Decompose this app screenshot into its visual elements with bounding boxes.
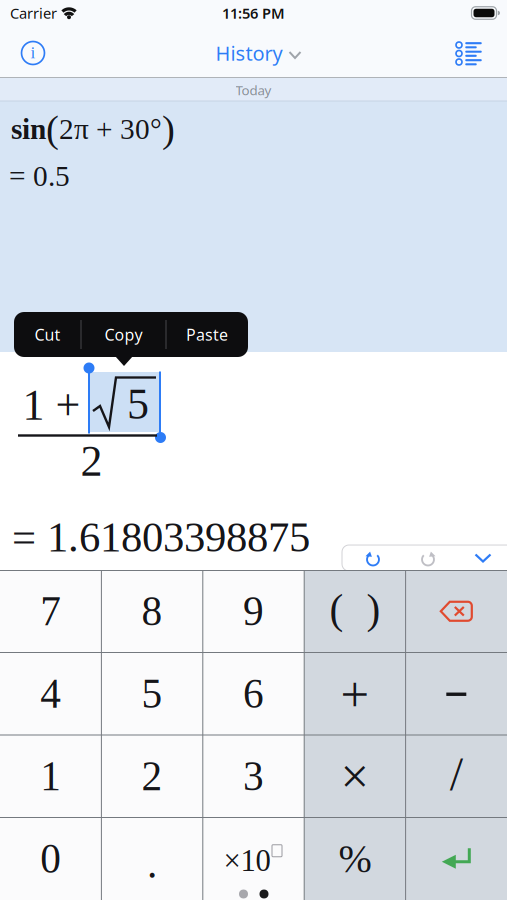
button[interactable]: ×10	[203, 817, 304, 900]
button[interactable]	[406, 570, 507, 652]
button[interactable]: ×	[304, 735, 406, 817]
staticText: = 0.5	[9, 160, 70, 192]
button[interactable]: 4	[0, 652, 101, 735]
staticText: 0	[40, 836, 61, 882]
staticText: (	[46, 108, 59, 150]
button[interactable]: History	[215, 32, 300, 74]
staticText: History	[215, 40, 282, 66]
button[interactable]: Copy	[81, 312, 165, 357]
staticText: 11:56 PM	[222, 3, 285, 23]
button[interactable]: .	[101, 817, 203, 900]
button[interactable]	[406, 817, 507, 900]
staticText: Copy	[104, 324, 142, 345]
button[interactable]	[455, 545, 507, 571]
button[interactable]	[406, 652, 507, 735]
staticText: 8	[142, 588, 163, 634]
staticText: 5	[142, 671, 163, 717]
button[interactable]: 3	[203, 735, 304, 817]
staticText: )	[366, 586, 380, 632]
staticText: 3	[243, 753, 264, 799]
button[interactable]	[400, 545, 455, 571]
staticText: = 1.61803398875	[12, 513, 310, 561]
button[interactable]: 5	[101, 652, 203, 735]
button[interactable]: 7	[0, 570, 101, 652]
staticText: +	[340, 667, 369, 723]
button[interactable]: Paste	[166, 312, 248, 357]
staticText: ×10	[223, 844, 270, 878]
staticText: 1 +	[22, 381, 80, 429]
button[interactable]: +	[304, 652, 406, 735]
staticText: %	[338, 837, 371, 881]
staticText: 1	[40, 753, 61, 799]
button[interactable]: 2	[101, 735, 203, 817]
button[interactable]: %	[304, 817, 406, 900]
staticText: Paste	[186, 324, 228, 345]
staticText: 6	[243, 671, 264, 717]
staticText: )	[162, 108, 175, 150]
staticText: 9	[243, 588, 264, 634]
button[interactable]	[345, 545, 400, 571]
staticText: sin	[11, 113, 46, 145]
button[interactable]: i	[13, 33, 53, 73]
staticText: ×	[340, 748, 369, 804]
button[interactable]: 1	[0, 735, 101, 817]
staticText: 7	[40, 588, 61, 634]
staticText: .	[147, 841, 157, 887]
button[interactable]: 0	[0, 817, 101, 900]
staticText: 2π + 30°	[59, 113, 162, 145]
button[interactable]: 6	[203, 652, 304, 735]
staticText: Carrier	[10, 3, 57, 23]
button[interactable]: 8	[101, 570, 203, 652]
staticText: Today	[235, 81, 271, 99]
staticText: /	[450, 748, 463, 801]
button[interactable]: 9	[203, 570, 304, 652]
staticText: i	[30, 43, 35, 62]
staticText: Cut	[34, 324, 60, 345]
button[interactable]: (	[304, 570, 406, 652]
staticText: 5	[127, 380, 149, 428]
button[interactable]	[449, 34, 489, 72]
button[interactable]: /	[406, 735, 507, 817]
button[interactable]: Cut	[14, 312, 80, 357]
staticText: 2	[142, 753, 163, 799]
staticText: (	[329, 586, 343, 632]
staticText: 2	[80, 437, 102, 485]
staticText: 4	[40, 671, 61, 717]
